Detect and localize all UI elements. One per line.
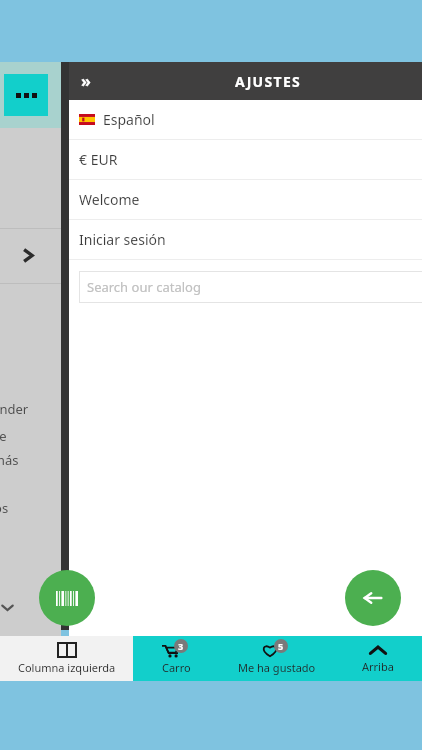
button[interactable]: € EUR <box>69 140 422 180</box>
staticText: Iniciar sesión <box>79 230 166 249</box>
button[interactable]: Columna izquierda <box>0 636 133 681</box>
button[interactable]: More options <box>4 74 48 116</box>
button[interactable]: Arriba <box>334 636 422 681</box>
staticText: Columna izquierda <box>18 660 116 675</box>
staticText: Welcome <box>79 190 140 209</box>
staticText: Me ha gustado <box>238 660 316 675</box>
button[interactable]: 3 <box>133 636 220 681</box>
button[interactable]: Back <box>345 570 401 626</box>
staticText: sobre <box>0 427 7 445</box>
staticText: » <box>81 70 91 92</box>
staticText: entender los <box>0 400 33 424</box>
button[interactable]: Iniciar sesión <box>69 220 422 260</box>
staticText: 5 <box>278 640 284 652</box>
staticText: Arriba <box>362 659 394 674</box>
button[interactable]: Welcome <box>69 180 422 220</box>
staticText: de los <box>0 499 9 517</box>
button[interactable]: Español <box>69 100 422 140</box>
button[interactable]: Close drawer <box>69 64 103 98</box>
button[interactable]: Search our catalog <box>79 271 422 303</box>
staticText: Search our catalog <box>87 278 201 296</box>
staticText: Español <box>103 110 155 129</box>
staticText: Carro <box>162 660 191 675</box>
staticText: los más <box>0 451 19 469</box>
staticText: € EUR <box>79 150 118 169</box>
button[interactable]: 5 <box>220 636 334 681</box>
staticText: AJUSTES <box>235 72 302 91</box>
button[interactable]: Scan barcode <box>39 570 95 626</box>
staticText: 3 <box>178 640 184 652</box>
